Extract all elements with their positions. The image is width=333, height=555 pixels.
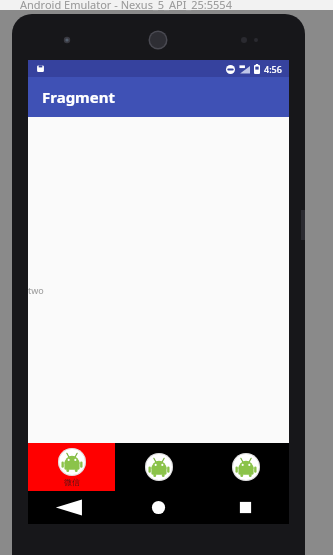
staticText: Fragment [42, 87, 115, 107]
button[interactable]: Back [28, 491, 115, 524]
button[interactable]: Tab [202, 443, 289, 491]
button[interactable]: 微信 [28, 443, 115, 491]
button[interactable]: Recents [202, 491, 289, 524]
staticText: 4:56 [264, 63, 282, 75]
staticText: 微信 [64, 477, 80, 487]
staticText: two [28, 284, 44, 296]
staticText: Android Emulator - Nexus_5_API_25:5554 [20, 0, 232, 12]
button[interactable]: Tab [115, 443, 202, 491]
button[interactable]: Home [115, 491, 202, 524]
